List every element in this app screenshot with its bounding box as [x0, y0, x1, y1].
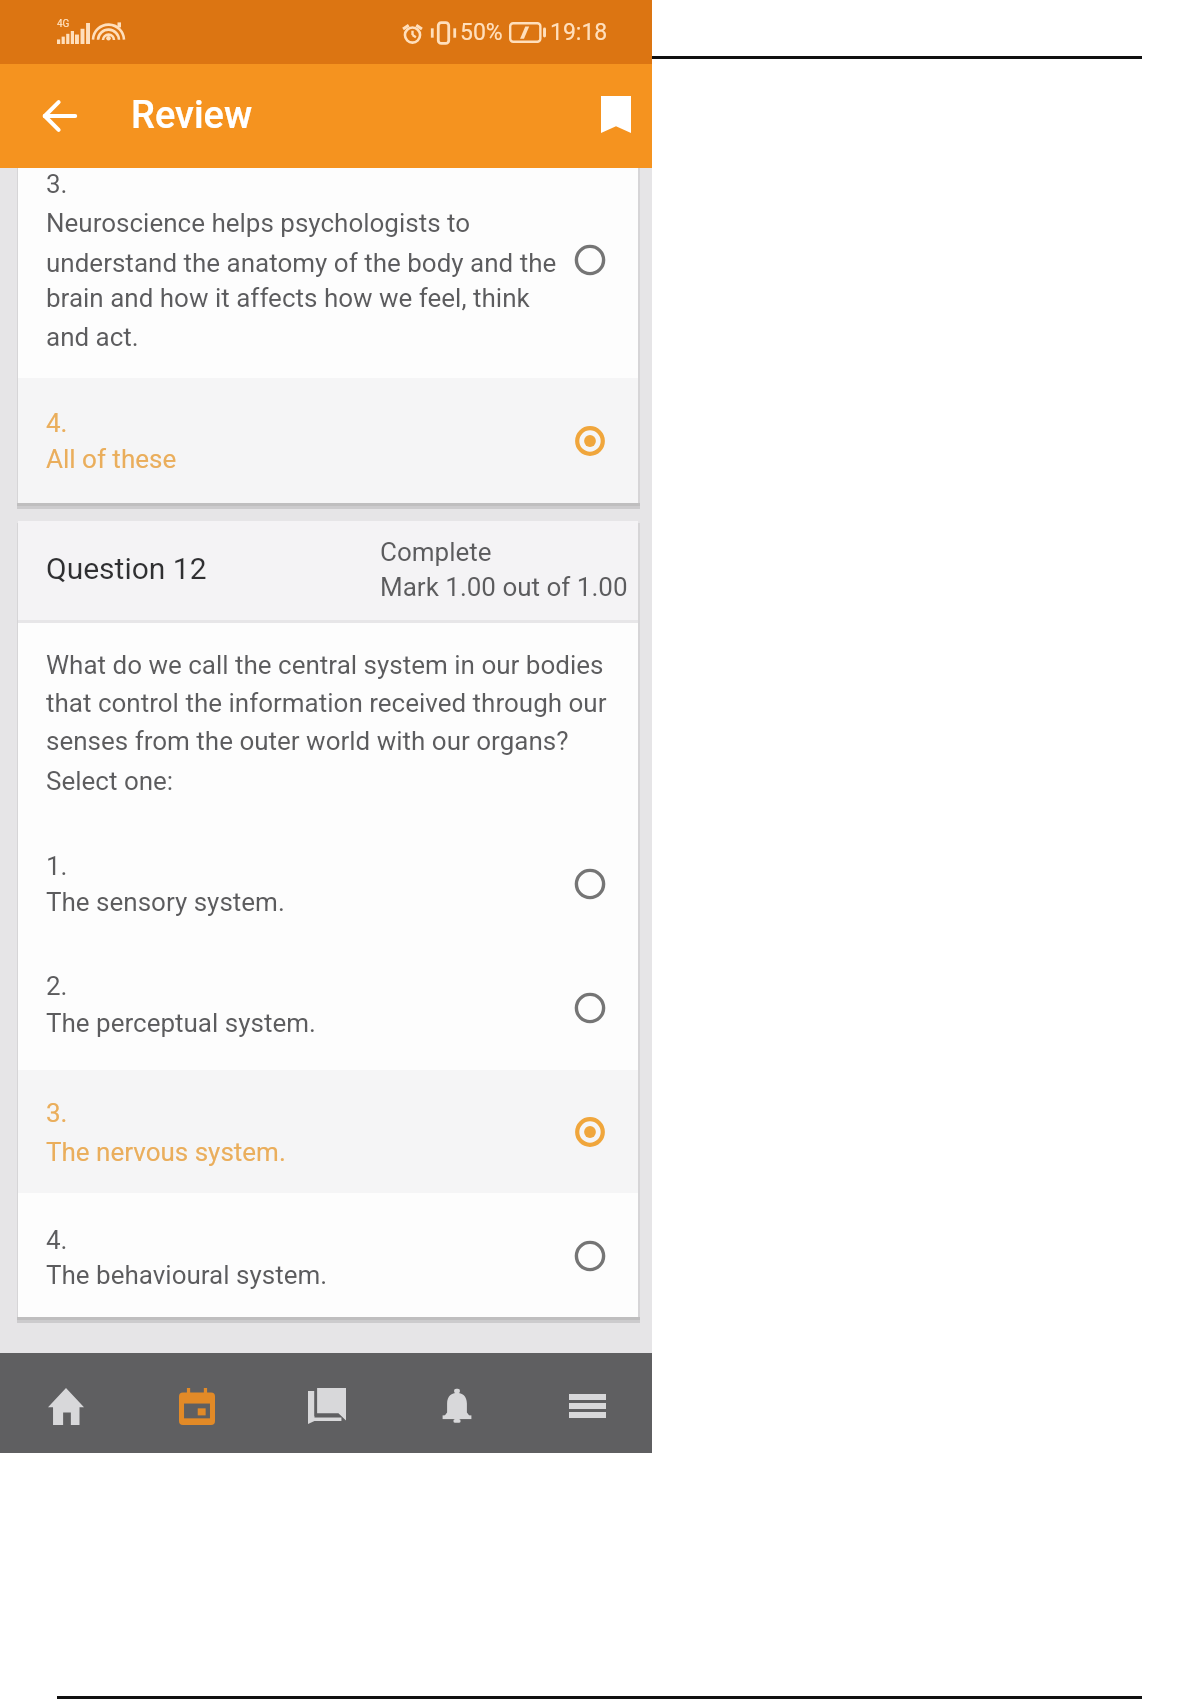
- button[interactable]: Select answer: [567, 861, 613, 907]
- button[interactable]: Notifications: [392, 1353, 522, 1453]
- staticText: 3.: [46, 169, 68, 199]
- button[interactable]: Select answer: [567, 1233, 613, 1279]
- staticText: brain and how it affects how we feel, th…: [46, 283, 530, 313]
- button[interactable]: [18, 1070, 638, 1193]
- button[interactable]: Messages: [262, 1353, 392, 1453]
- staticText: The perceptual system.: [46, 1008, 316, 1038]
- staticText: 19:18: [550, 19, 608, 46]
- staticText: Complete: [380, 537, 492, 567]
- staticText: 2.: [46, 971, 68, 1001]
- button[interactable]: Home: [0, 1353, 131, 1453]
- button[interactable]: Menu: [522, 1353, 652, 1453]
- button[interactable]: [18, 378, 638, 503]
- staticText: and act.: [46, 322, 139, 352]
- button[interactable]: Select answer: [567, 985, 613, 1031]
- button[interactable]: Back: [26, 82, 94, 150]
- staticText: The behavioural system.: [46, 1260, 328, 1290]
- staticText: 1.: [46, 851, 68, 881]
- button[interactable]: Select answer: [567, 237, 613, 283]
- staticText: understand the anatomy of the body and t…: [46, 248, 557, 278]
- staticText: Neuroscience helps psychologists to: [46, 208, 471, 238]
- button[interactable]: [18, 1193, 638, 1317]
- staticText: Review: [131, 93, 253, 138]
- staticText: 4.: [46, 1225, 68, 1255]
- staticText: What do we call the central system in ou…: [46, 650, 604, 680]
- staticText: 4G: [57, 18, 70, 30]
- button[interactable]: Calendar: [131, 1353, 262, 1453]
- button[interactable]: Selected answer: [567, 1109, 613, 1155]
- staticText: The nervous system.: [46, 1137, 286, 1167]
- button[interactable]: Bookmark: [586, 84, 646, 144]
- staticText: 50%: [460, 19, 503, 46]
- staticText: that control the information received th…: [46, 688, 607, 718]
- staticText: senses from the outer world with our org…: [46, 726, 569, 756]
- staticText: Question 12: [46, 551, 207, 586]
- button[interactable]: Selected answer: [567, 418, 613, 464]
- staticText: The sensory system.: [46, 887, 285, 917]
- staticText: Select one:: [46, 766, 174, 796]
- staticText: 4.: [46, 408, 68, 438]
- staticText: 3.: [46, 1098, 68, 1128]
- staticText: Mark 1.00 out of 1.00: [380, 572, 628, 602]
- staticText: All of these: [46, 444, 177, 474]
